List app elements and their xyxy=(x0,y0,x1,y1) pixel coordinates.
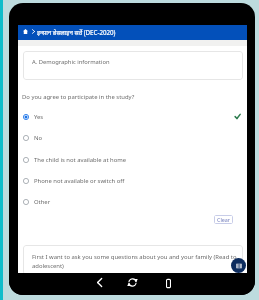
button[interactable]: First I want to ask you some questions a… xyxy=(23,245,243,275)
button[interactable]: A. Demographic information xyxy=(23,51,243,80)
button[interactable]: Yes xyxy=(18,106,247,127)
staticText: No xyxy=(34,134,43,142)
staticText: Clear xyxy=(217,216,231,223)
staticText: First I want to ask you some questions a… xyxy=(32,253,239,269)
staticText: The child is not available at home xyxy=(34,156,127,164)
staticText: Other xyxy=(34,198,51,206)
staticText: इन्सान बेसलाइन सर्वे (DEC-2020) xyxy=(37,28,116,36)
button[interactable]: Clear xyxy=(214,215,233,224)
staticText: A. Demographic information xyxy=(32,58,110,66)
button[interactable]: Open module list xyxy=(231,258,246,273)
staticText: Phone not available or switch off xyxy=(34,177,125,185)
button[interactable]: Phone not available or switch off xyxy=(18,170,247,191)
button[interactable]: The child is not available at home xyxy=(18,149,247,170)
staticText: Do you agree to participate in the study… xyxy=(22,93,135,101)
button[interactable]: Back xyxy=(91,274,107,290)
button[interactable]: Rotate screen xyxy=(124,274,140,290)
button[interactable]: No xyxy=(18,127,247,148)
staticText: Yes xyxy=(34,113,44,121)
button[interactable]: Other xyxy=(18,191,247,212)
button[interactable]: Recent apps xyxy=(160,275,176,291)
